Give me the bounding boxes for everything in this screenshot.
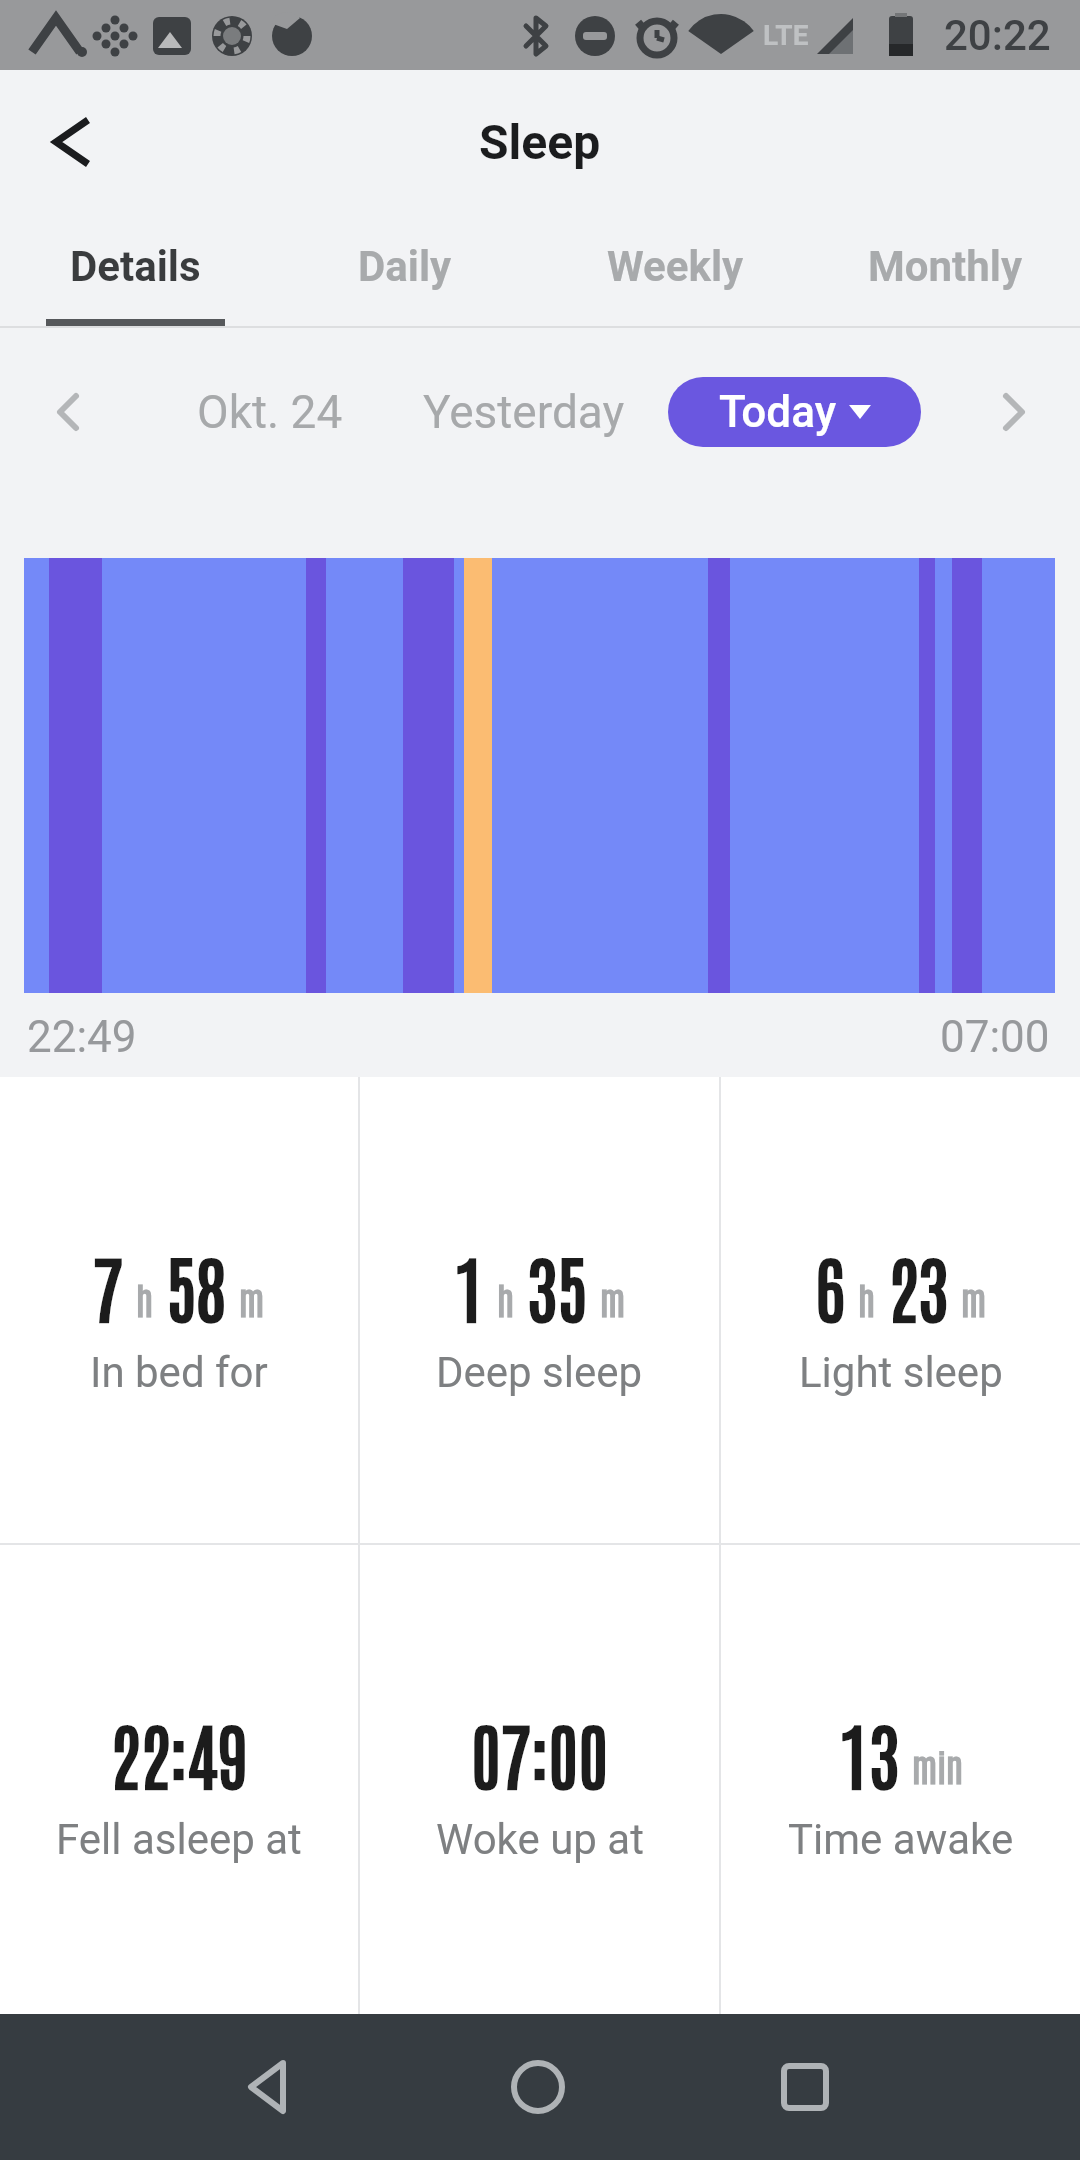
staticText: m: [600, 1275, 626, 1322]
staticText: 22:49: [110, 1706, 248, 1799]
staticText: Sleep: [479, 114, 601, 170]
staticText: h: [497, 1275, 515, 1322]
staticText: 22:49: [27, 1011, 137, 1063]
button[interactable]: [40, 110, 104, 174]
button[interactable]: 1: [360, 1077, 719, 1543]
staticText: 1: [454, 1239, 485, 1332]
staticText: h: [136, 1275, 154, 1322]
button[interactable]: 13: [721, 1545, 1080, 2014]
staticText: m: [961, 1275, 987, 1322]
button[interactable]: 6: [721, 1077, 1080, 1543]
staticText: 58: [166, 1239, 227, 1332]
staticText: Today: [719, 386, 837, 438]
button[interactable]: Okt. 24: [170, 377, 370, 447]
staticText: 07:00: [471, 1706, 609, 1799]
staticText: 35: [527, 1239, 588, 1332]
staticText: min: [912, 1742, 964, 1789]
button[interactable]: Today: [668, 377, 921, 447]
staticText: LTE: [763, 19, 809, 52]
button[interactable]: 22:49: [0, 1545, 358, 2014]
button[interactable]: Daily: [270, 230, 540, 326]
staticText: 7: [93, 1239, 124, 1332]
staticText: Fell asleep at: [56, 1815, 302, 1864]
button[interactable]: Yesterday: [420, 377, 628, 447]
staticText: Deep sleep: [436, 1348, 643, 1397]
staticText: In bed for: [90, 1348, 268, 1397]
staticText: Okt. 24: [197, 385, 343, 439]
staticText: 23: [888, 1239, 949, 1332]
staticText: Time awake: [788, 1815, 1014, 1864]
staticText: Yesterday: [423, 385, 625, 439]
staticText: Woke up at: [436, 1815, 644, 1864]
staticText: 20:22: [944, 11, 1051, 60]
staticText: m: [239, 1275, 265, 1322]
staticText: Monthly: [868, 242, 1023, 291]
button[interactable]: [984, 384, 1040, 440]
button[interactable]: Details: [0, 230, 270, 326]
button[interactable]: 7: [0, 1077, 358, 1543]
staticText: Weekly: [607, 242, 744, 291]
button[interactable]: [40, 384, 96, 440]
button[interactable]: [506, 2055, 570, 2119]
staticText: 07:00: [940, 1011, 1050, 1063]
staticText: h: [858, 1275, 876, 1322]
staticText: Details: [70, 242, 201, 291]
button[interactable]: [773, 2055, 837, 2119]
button[interactable]: Monthly: [810, 230, 1080, 326]
button[interactable]: 07:00: [360, 1545, 719, 2014]
button[interactable]: [238, 2055, 302, 2119]
staticText: Daily: [358, 242, 452, 291]
staticText: Light sleep: [799, 1348, 1003, 1397]
button[interactable]: Weekly: [540, 230, 810, 326]
staticText: 6: [815, 1239, 846, 1332]
staticText: 13: [839, 1706, 900, 1799]
